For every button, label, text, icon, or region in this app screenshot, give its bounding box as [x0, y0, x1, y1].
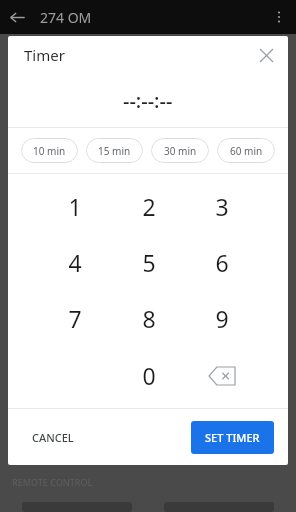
button[interactable]: 2 — [112, 178, 185, 234]
staticText: 2 — [142, 191, 156, 222]
button[interactable]: 4 — [38, 234, 112, 290]
button[interactable]: Close — [250, 39, 282, 71]
staticText: REMOTE CONTROL — [12, 476, 93, 488]
button[interactable]: 3 — [185, 178, 258, 234]
staticText: 3 — [215, 191, 229, 222]
staticText: 8 — [142, 303, 156, 334]
staticText: 1 — [68, 191, 82, 222]
button[interactable]: 15 min — [86, 138, 143, 163]
staticText: 7 — [68, 303, 82, 334]
staticText: 9 — [215, 303, 229, 334]
button[interactable]: 6 — [185, 234, 258, 290]
button[interactable]: 0 — [112, 347, 185, 404]
button[interactable]: SET TIMER — [191, 421, 274, 454]
staticText: 30 min — [164, 144, 197, 158]
button[interactable]: 7 — [38, 290, 112, 347]
button[interactable]: 1 — [38, 178, 112, 234]
button[interactable]: 10 min — [21, 138, 78, 163]
staticText: --:--:-- — [123, 87, 173, 114]
staticText: 5 — [142, 247, 156, 278]
button[interactable]: Back — [0, 0, 34, 34]
staticText: 10 min — [33, 144, 66, 158]
staticText: 4 — [68, 247, 82, 278]
staticText: CANCEL — [32, 430, 74, 445]
button[interactable]: 60 min — [217, 138, 275, 163]
staticText: Timer — [24, 45, 65, 65]
staticText: 15 min — [98, 144, 131, 158]
button[interactable]: More options — [262, 0, 296, 34]
button[interactable]: 8 — [112, 290, 185, 347]
staticText: 274 OM — [40, 8, 92, 27]
button[interactable]: Backspace — [185, 347, 258, 404]
button[interactable]: 30 min — [151, 138, 209, 163]
other: Backspace — [185, 347, 258, 404]
button[interactable]: CANCEL — [22, 422, 84, 453]
button[interactable]: 9 — [185, 290, 258, 347]
staticText: SET TIMER — [205, 430, 260, 445]
staticText: 0 — [142, 360, 156, 391]
staticText: 60 min — [230, 144, 263, 158]
button[interactable]: 5 — [112, 234, 185, 290]
staticText: 6 — [215, 247, 229, 278]
